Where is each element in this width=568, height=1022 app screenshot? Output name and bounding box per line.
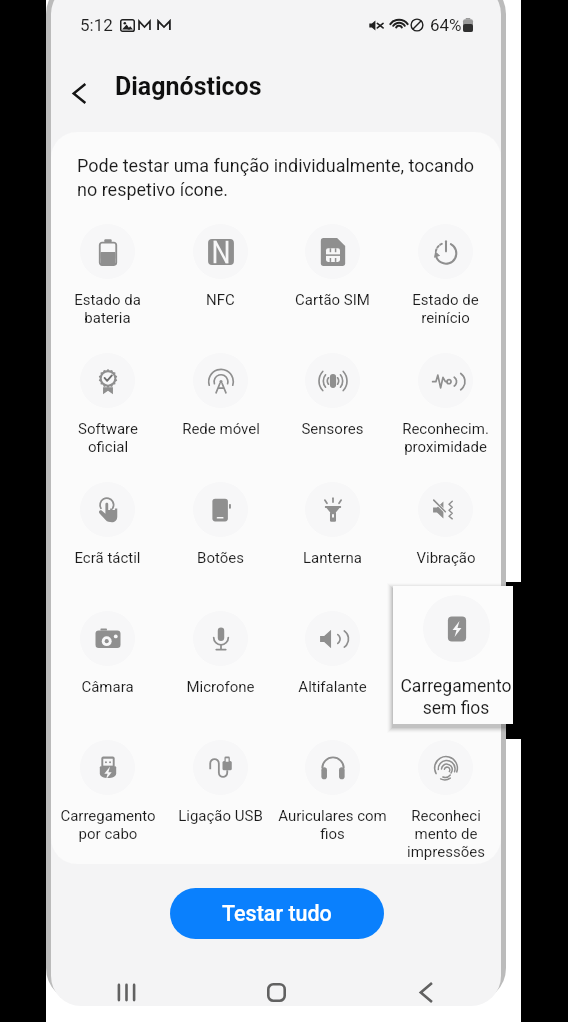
staticText: Cartão SIM [295,291,370,309]
staticText: Software oficial [78,420,138,456]
button[interactable]: Testar tudo [170,888,384,939]
button[interactable]: Recent apps [102,968,150,1006]
staticText: Altifalante [298,678,367,696]
button[interactable]: Auriculares com fios [276,740,389,843]
staticText: Carregamento por cabo [60,807,156,843]
staticText: Botões [197,549,244,567]
staticText: Rede móvel [182,420,260,438]
staticText: Diagnósticos [115,72,262,101]
button[interactable]: Vibração [389,482,501,567]
staticText: Pode testar uma função individualmente, … [77,155,481,200]
button[interactable]: Carregamento por cabo [51,740,164,843]
button[interactable]: Ligação USB [164,740,277,825]
staticText: Vibração [416,549,476,567]
button[interactable]: Lanterna [276,482,389,567]
button[interactable]: Microfone [164,611,277,696]
button[interactable]: NFC [164,224,277,309]
button[interactable]: Home [252,968,300,1006]
button[interactable]: Estado da bateria [51,224,164,327]
button[interactable]: Câmara [51,611,164,696]
button[interactable]: Estado de reinício [389,224,501,327]
staticText: Ligação USB [178,807,263,825]
staticText: Sensores [301,420,364,438]
button[interactable]: Sensores [276,353,389,438]
staticText: Reconhecim. proximidade [402,420,489,456]
button[interactable]: Botões [164,482,277,567]
staticText: Auriculares com fios [278,807,387,843]
button[interactable]: Carregamento sem fios [389,611,501,714]
staticText: Carregamento sem fios [398,678,494,714]
staticText: 5:12 [80,15,113,35]
staticText: Carregamento sem fios [400,676,512,718]
staticText: Estado de reinício [412,291,479,327]
button[interactable]: Back [402,968,450,1006]
button[interactable]: Software oficial [51,353,164,456]
staticText: Reconheci mento de impressões digitais [407,807,485,864]
button[interactable]: Altifalante [276,611,389,696]
button[interactable]: Reconhecim. proximidade [389,353,501,456]
staticText: Testar tudo [222,901,332,926]
staticText: 64% [430,15,462,35]
button[interactable]: Reconheci mento de impressões digitais [389,740,501,864]
staticText: Lanterna [303,549,362,567]
staticText: Ecrã táctil [74,549,141,567]
staticText: NFC [206,291,235,309]
button[interactable]: Back [60,74,98,112]
staticText: Câmara [81,678,134,696]
staticText: Microfone [186,678,255,696]
button[interactable]: Rede móvel [164,353,277,438]
button[interactable]: Cartão SIM [276,224,389,309]
staticText: Estado da bateria [74,291,141,327]
button[interactable]: Carregamento sem fios [393,586,519,724]
button[interactable]: Ecrã táctil [51,482,164,567]
